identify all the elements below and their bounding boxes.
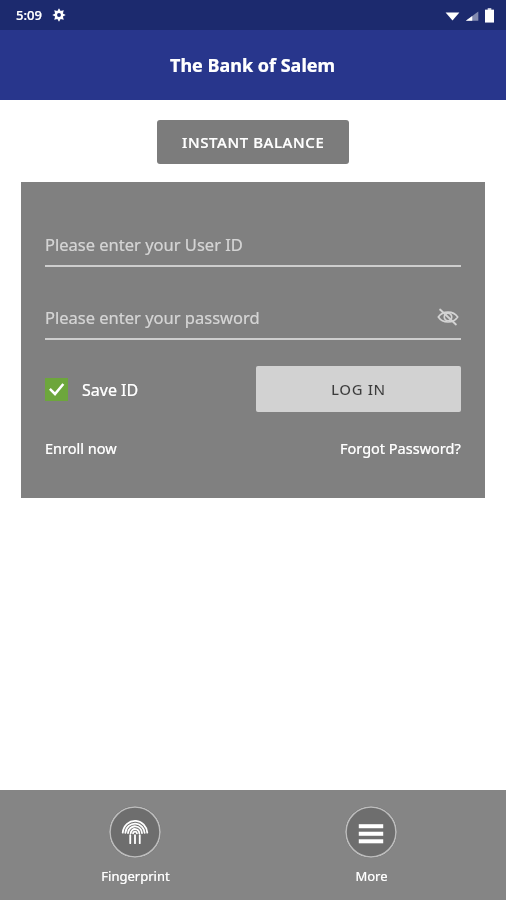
staticText: LOG IN — [331, 379, 386, 399]
button[interactable]: Forgot Password? — [340, 438, 461, 458]
button[interactable]: Show password — [435, 304, 461, 330]
button[interactable]: More options — [311, 804, 431, 887]
staticText: Enroll now — [45, 438, 117, 458]
button[interactable]: Please enter your User ID — [45, 230, 461, 258]
staticText: INSTANT BALANCE — [182, 132, 325, 152]
button[interactable]: Please enter your password — [45, 303, 461, 331]
staticText: Please enter your password — [45, 306, 260, 328]
button[interactable]: Save ID — [45, 378, 139, 401]
staticText: Fingerprint — [101, 867, 170, 885]
staticText: Save ID — [82, 379, 139, 401]
button[interactable]: Enroll now — [45, 438, 117, 458]
staticText: Forgot Password? — [340, 438, 461, 458]
button[interactable]: INSTANT BALANCE — [157, 120, 349, 164]
staticText: Please enter your User ID — [45, 233, 243, 255]
button[interactable]: Fingerprint login — [75, 804, 195, 887]
button[interactable]: LOG IN — [256, 366, 461, 412]
staticText: More — [355, 867, 388, 885]
staticText: The Bank of Salem — [170, 53, 336, 78]
staticText: 5:09 — [16, 6, 42, 24]
